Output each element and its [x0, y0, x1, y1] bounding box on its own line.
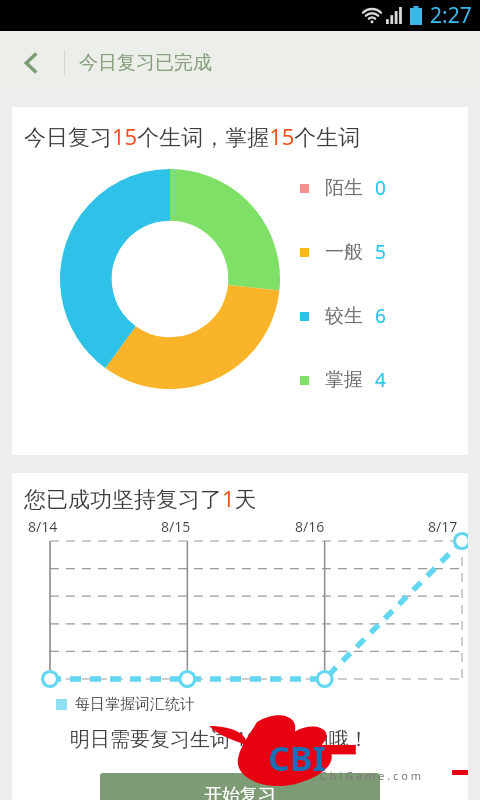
- staticText: 明日需要复习生词 10 个,加油哦！: [70, 725, 369, 752]
- button[interactable]: Back: [0, 31, 64, 95]
- staticText: 您已成功坚持复习了1天: [24, 483, 257, 513]
- staticText: CBI: [268, 735, 326, 781]
- button[interactable]: 掌握: [300, 367, 440, 393]
- button[interactable]: 开始复习: [100, 773, 380, 800]
- staticText: 0: [375, 175, 386, 201]
- staticText: 掌握: [325, 368, 363, 392]
- staticText: 较生: [325, 304, 363, 328]
- button[interactable]: 每日掌握词汇统计: [56, 695, 195, 714]
- button[interactable]: 一般: [300, 239, 440, 265]
- staticText: C b i G a m e . c o m: [320, 768, 421, 783]
- staticText: 4: [375, 367, 386, 393]
- staticText: 今日复习15个生词，掌握15个生词: [24, 121, 361, 151]
- staticText: 2:27: [430, 1, 472, 30]
- staticText: 今日复习已完成: [79, 51, 212, 75]
- staticText: 8/14: [28, 517, 58, 536]
- staticText: 每日掌握词汇统计: [75, 695, 195, 714]
- staticText: 开始复习: [204, 784, 276, 800]
- button[interactable]: 较生: [300, 303, 440, 329]
- staticText: 5: [375, 239, 386, 265]
- staticText: 8/17: [428, 517, 458, 536]
- staticText: 6: [375, 303, 386, 329]
- staticText: 陌生: [325, 176, 363, 200]
- staticText: 8/15: [161, 517, 191, 536]
- staticText: 一般: [325, 240, 363, 264]
- staticText: 8/16: [295, 517, 325, 536]
- button[interactable]: 陌生: [300, 175, 440, 201]
